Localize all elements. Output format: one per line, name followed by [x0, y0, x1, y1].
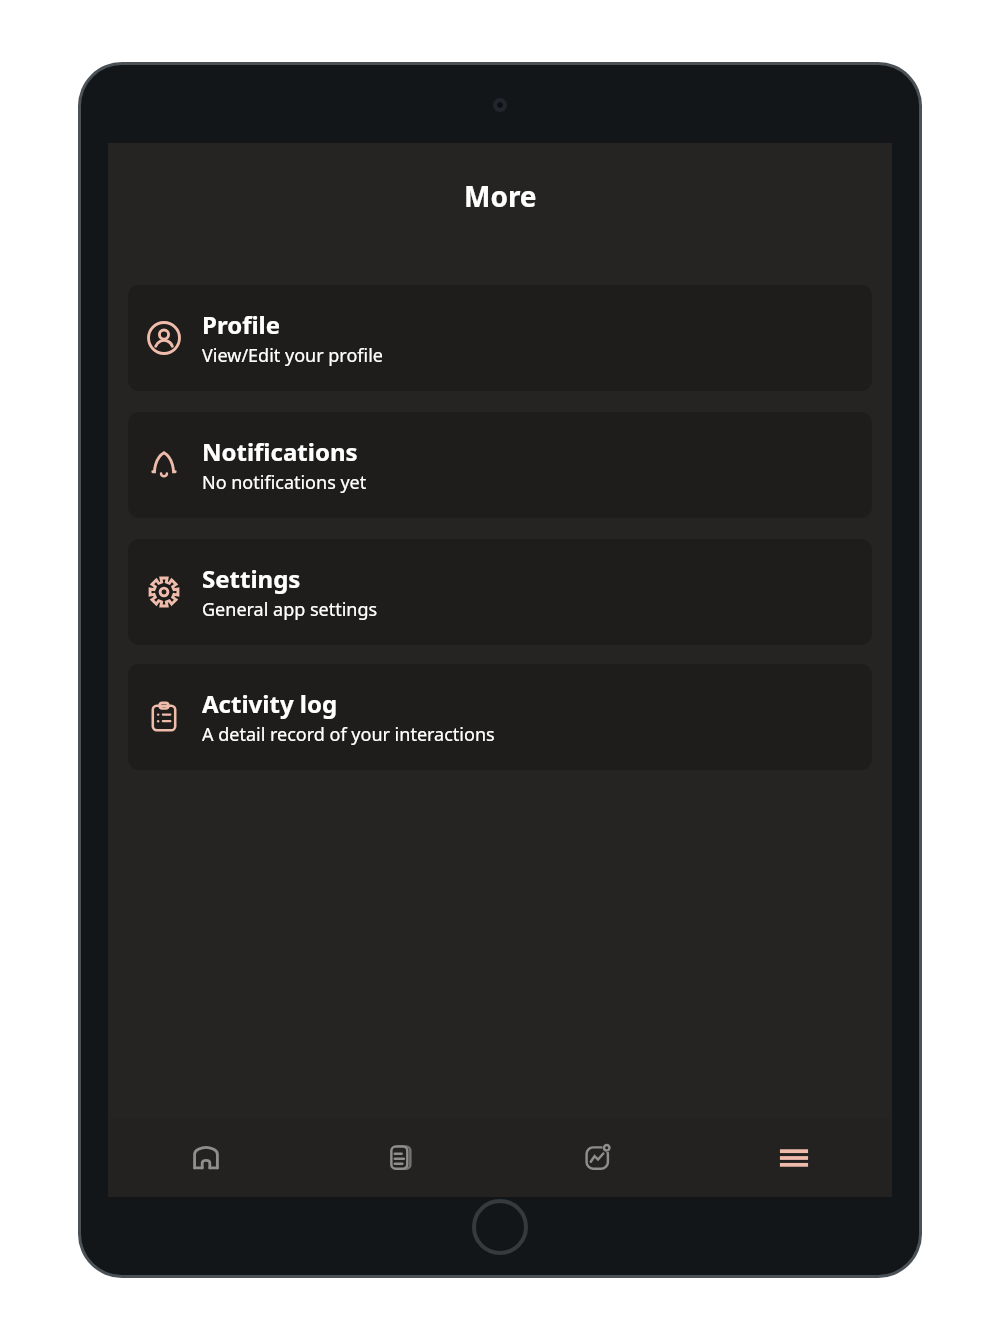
button[interactable]: Notifications — [128, 412, 872, 518]
staticText: A detail record of your interactions — [202, 722, 495, 747]
button[interactable]: Home — [108, 1119, 304, 1197]
button[interactable]: Menu — [696, 1119, 892, 1197]
staticText: Notifications — [202, 435, 358, 468]
staticText: More — [464, 177, 537, 215]
staticText: No notifications yet — [202, 470, 367, 495]
button[interactable]: Settings — [128, 539, 872, 645]
button[interactable]: Analytics — [500, 1119, 696, 1197]
staticText: Activity log — [202, 687, 338, 720]
staticText: General app settings — [202, 597, 378, 622]
staticText: View/Edit your profile — [202, 343, 383, 368]
other: Home button — [472, 1199, 528, 1255]
button[interactable]: Profile — [128, 285, 872, 391]
button[interactable]: Reports — [304, 1119, 500, 1197]
button[interactable]: Activity log — [128, 664, 872, 770]
staticText: Profile — [202, 308, 281, 341]
staticText: Settings — [202, 562, 301, 595]
